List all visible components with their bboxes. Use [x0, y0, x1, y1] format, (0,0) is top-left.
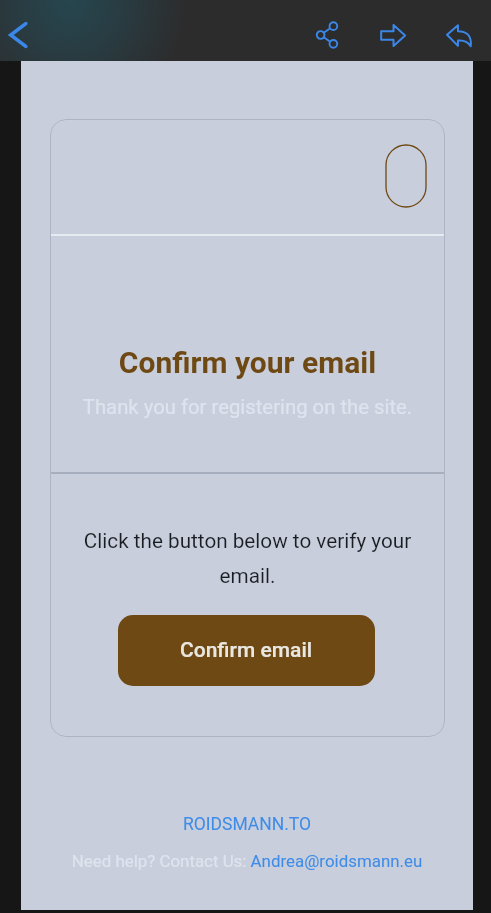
staticText: Click the button below to verify your em…	[66, 529, 429, 588]
button[interactable]: Confirm email	[118, 615, 375, 686]
button[interactable]: Back	[0, 13, 40, 57]
staticText: Confirm your email	[50, 345, 445, 380]
button[interactable]: Reply	[437, 13, 481, 57]
button[interactable]: Forward	[371, 13, 415, 57]
staticText: Thank you for registering on the site.	[50, 395, 445, 419]
staticText: Need help? Contact Us: Andrea@roidsmann.…	[21, 851, 473, 871]
button[interactable]: ROIDSMANN.TO	[21, 814, 473, 835]
staticText: Confirm email	[180, 638, 313, 663]
button[interactable]: Share	[305, 13, 349, 57]
